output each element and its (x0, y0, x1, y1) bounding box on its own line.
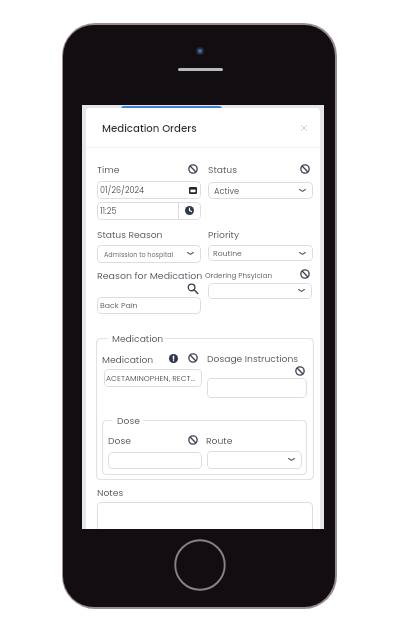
staticText: Admission to hospital (104, 250, 174, 259)
button[interactable]: 11:25 (97, 202, 201, 220)
button[interactable]: Search (187, 283, 198, 294)
button[interactable] (208, 283, 312, 299)
button[interactable]: Not permitted (188, 353, 198, 363)
button[interactable]: Active (208, 182, 313, 199)
staticText: Status Reason (97, 228, 163, 241)
staticText: Route (206, 434, 233, 447)
button[interactable]: ACETAMINOPHEN, RECT… (104, 369, 202, 387)
staticText: Medication Orders (102, 121, 197, 135)
staticText: ACETAMINOPHEN, RECT… (106, 373, 196, 384)
staticText: Time (97, 163, 120, 176)
button[interactable]: Routine (208, 245, 313, 261)
button[interactable]: Admission to hospital (97, 245, 201, 263)
staticText: 11:25 (100, 206, 117, 217)
staticText: Active (214, 185, 240, 196)
button[interactable] (97, 502, 313, 529)
staticText: Routine (213, 248, 242, 259)
button[interactable]: Not permitted (295, 366, 305, 376)
button[interactable]: Not permitted (188, 164, 198, 174)
staticText: Notes (97, 486, 124, 499)
button[interactable]: 01/26/2024 (97, 181, 201, 199)
button[interactable] (207, 451, 302, 469)
staticText: Dose (117, 414, 140, 427)
staticText: Dosage Instructions (207, 352, 299, 365)
button[interactable]: Not permitted (300, 269, 310, 279)
staticText: Dose (108, 434, 131, 447)
button[interactable]: Close dialog (297, 121, 310, 134)
staticText: Medication (102, 353, 154, 366)
staticText: Reason for Medication (97, 269, 203, 282)
staticText: Priority (208, 228, 240, 241)
staticText: Ordering Phsyician (205, 270, 272, 280)
button[interactable] (108, 452, 202, 469)
staticText: Back Pain (100, 300, 138, 311)
button[interactable]: Back Pain (97, 297, 201, 314)
button[interactable]: Not permitted (188, 435, 198, 445)
button[interactable] (207, 378, 307, 398)
button[interactable]: Not permitted (300, 164, 310, 174)
staticText: Status (208, 163, 237, 176)
staticText: 01/26/2024 (100, 185, 145, 196)
staticText: Medication (112, 332, 164, 345)
